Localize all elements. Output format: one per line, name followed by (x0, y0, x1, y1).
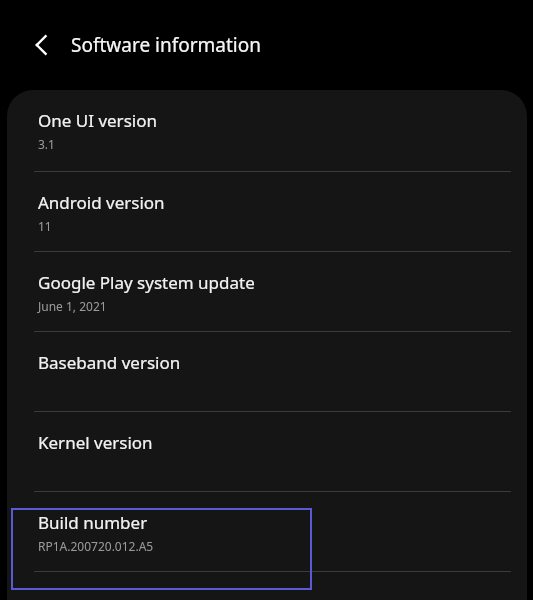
staticText: 3.1 (38, 136, 55, 152)
staticText: 11 (38, 218, 52, 234)
button[interactable]: Back (21, 24, 63, 66)
button[interactable]: Android version (7, 172, 527, 251)
button[interactable]: Kernel version (7, 412, 527, 491)
button[interactable]: Build number focused (11, 508, 312, 590)
staticText: Build number (38, 511, 148, 534)
staticText: Baseband version (38, 351, 181, 374)
button[interactable]: One UI version (7, 90, 527, 171)
staticText: Google Play system update (38, 271, 255, 294)
button[interactable]: Google Play system update (7, 252, 527, 331)
button[interactable]: Baseband version (7, 332, 527, 411)
staticText: RP1A.200720.012.A5 (38, 538, 154, 554)
staticText: Kernel version (38, 431, 153, 454)
button[interactable]: Build number (7, 492, 527, 571)
staticText: One UI version (38, 109, 157, 132)
staticText: Android version (38, 191, 165, 214)
staticText: June 1, 2021 (38, 298, 107, 314)
staticText: Software information (71, 32, 261, 58)
